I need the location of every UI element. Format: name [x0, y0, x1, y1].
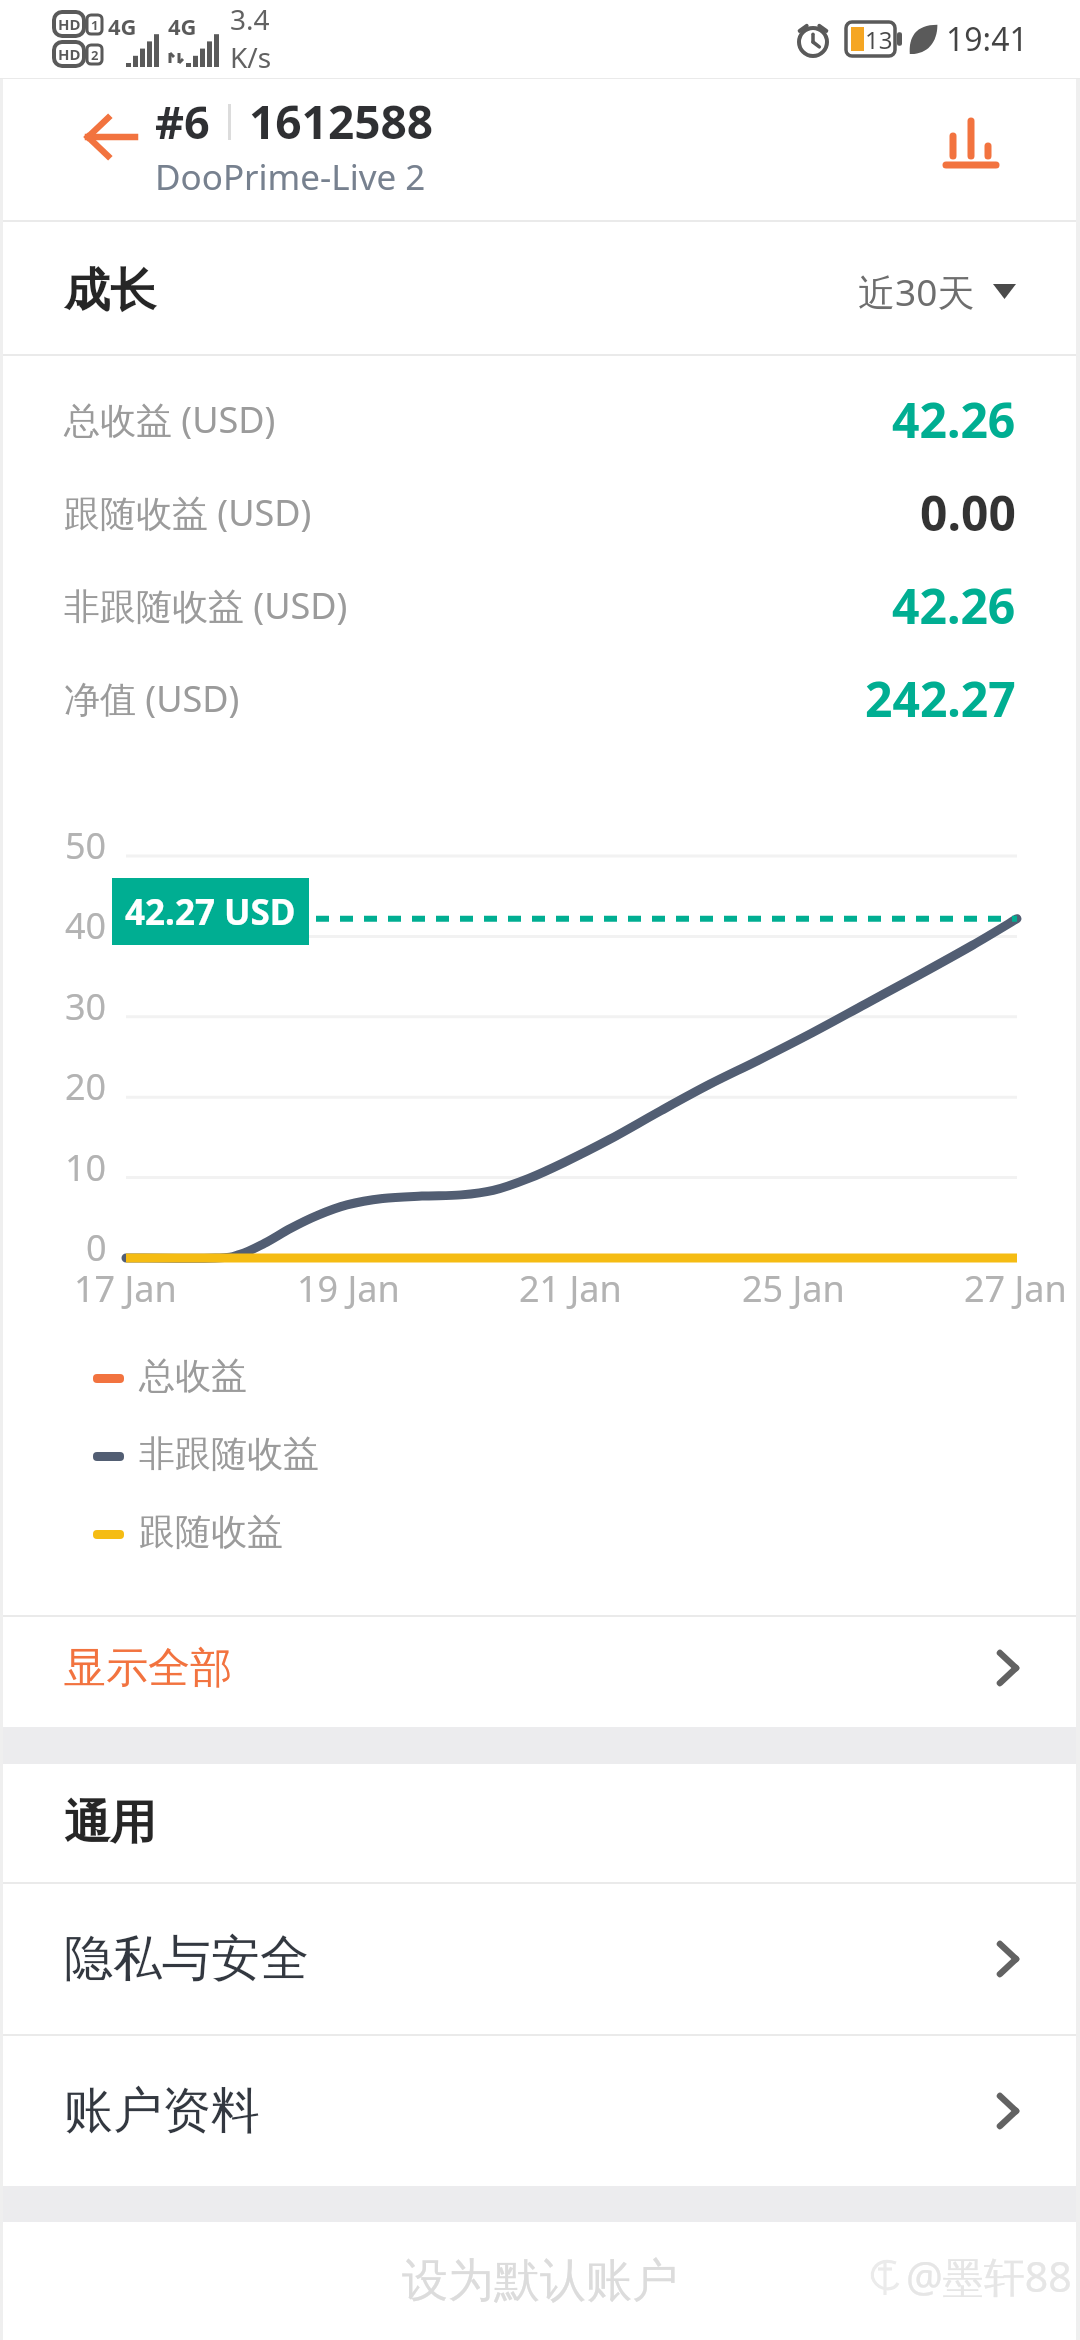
staticText: 非跟随收益 (USD) — [64, 581, 348, 630]
button[interactable]: 账户资料 — [0, 2036, 1080, 2186]
button[interactable]: 显示全部 — [0, 1617, 1080, 1727]
staticText: 10 — [65, 1143, 107, 1192]
staticText: @墨轩88 — [906, 2248, 1072, 2304]
staticText: 3.4 — [230, 0, 270, 38]
staticText: 账户资料 — [64, 2080, 260, 2142]
staticText: 2 — [91, 46, 99, 64]
button[interactable]: Statistics — [921, 97, 1021, 197]
staticText: 近30天 — [858, 266, 975, 317]
staticText: 242.27 — [865, 666, 1016, 731]
staticText: 25 Jan — [742, 1264, 845, 1313]
staticText: 50 — [65, 821, 107, 870]
staticText: 通用 — [64, 1794, 156, 1852]
staticText: HD — [58, 44, 81, 64]
staticText: 跟随收益 (USD) — [64, 488, 312, 537]
staticText: 0.00 — [920, 480, 1016, 545]
staticText: 42.26 — [892, 573, 1016, 638]
staticText: 27 Jan — [964, 1264, 1067, 1313]
button[interactable]: 成长 — [0, 222, 1080, 354]
staticText: 4G — [168, 11, 197, 41]
staticText: 跟随收益 — [139, 1509, 283, 1554]
staticText: 4G — [108, 11, 137, 41]
staticText: DooPrime-Live 2 — [155, 153, 426, 201]
button[interactable]: Back — [63, 89, 159, 185]
staticText: 总收益 — [139, 1353, 247, 1398]
staticText: 1 — [91, 16, 99, 34]
staticText: 21 Jan — [519, 1264, 622, 1313]
staticText: 0 — [86, 1223, 107, 1272]
staticText: 非跟随收益 — [139, 1431, 319, 1476]
staticText: 成长 — [64, 262, 156, 320]
staticText: HD — [58, 14, 81, 34]
staticText: 13 — [865, 23, 893, 56]
staticText: 1612588 — [249, 90, 434, 153]
button[interactable]: 隐私与安全 — [0, 1884, 1080, 2034]
staticText: 42.27 USD — [125, 888, 296, 936]
staticText: 30 — [65, 982, 107, 1031]
staticText: #6 — [155, 91, 210, 152]
staticText: 显示全部 — [64, 1642, 232, 1695]
staticText: 设为默认账户 — [402, 2252, 678, 2310]
staticText: 19 Jan — [297, 1264, 400, 1313]
staticText: K/s — [230, 38, 272, 76]
staticText: 17 Jan — [74, 1264, 177, 1313]
staticText: 40 — [65, 901, 107, 950]
staticText: 19:41 — [946, 17, 1028, 61]
staticText: 20 — [65, 1062, 107, 1111]
staticText: 隐私与安全 — [64, 1928, 309, 1990]
staticText: 总收益 (USD) — [64, 395, 276, 444]
button[interactable]: 设为默认账户 — [0, 2235, 1080, 2327]
staticText: 净值 (USD) — [64, 674, 240, 723]
staticText: 42.26 — [892, 387, 1016, 452]
